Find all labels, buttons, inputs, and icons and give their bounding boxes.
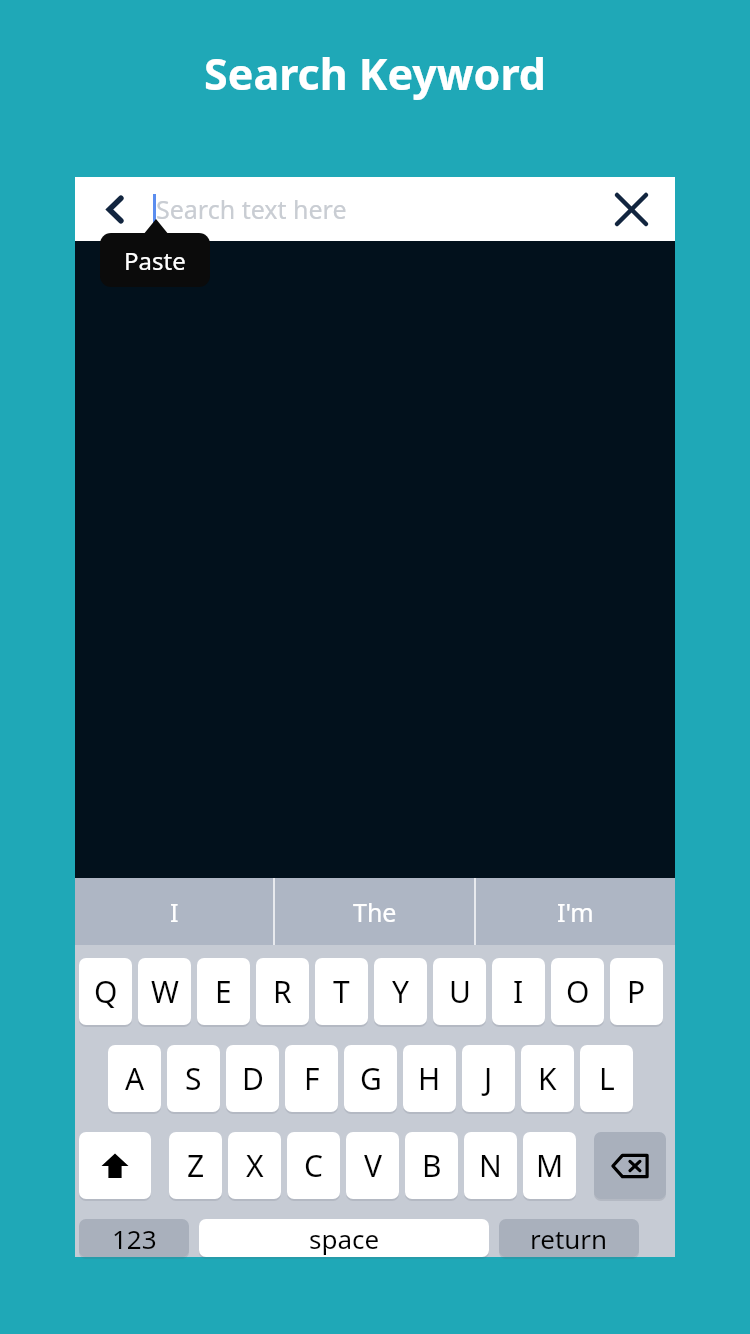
staticText: The [353,895,397,929]
staticText: K [538,1058,557,1099]
staticText: I [513,971,524,1012]
staticText: M [536,1145,564,1186]
staticText: F [304,1058,320,1099]
staticText: E [215,971,232,1012]
button[interactable]: D [226,1045,279,1112]
button[interactable]: Clear search [602,180,660,238]
staticText: J [484,1058,493,1099]
staticText: I [170,895,179,929]
button[interactable]: A [108,1045,161,1112]
button[interactable]: T [315,958,368,1025]
staticText: Paste [124,244,186,277]
staticText: P [627,971,646,1012]
button[interactable]: G [344,1045,397,1112]
button[interactable]: U [433,958,486,1025]
staticText: H [418,1058,441,1099]
staticText: R [273,971,292,1012]
staticText: A [125,1058,145,1099]
staticText: L [599,1058,615,1099]
staticText: G [360,1058,382,1099]
staticText: T [333,971,350,1012]
button[interactable]: Y [374,958,427,1025]
staticText: Q [94,971,118,1012]
button[interactable]: C [287,1132,340,1199]
button[interactable]: return [499,1219,639,1257]
button[interactable]: L [580,1045,633,1112]
staticText: N [479,1145,502,1186]
staticText: U [449,971,471,1012]
staticText: Search text here [156,192,347,226]
staticText: O [566,971,590,1012]
button[interactable]: Z [169,1132,222,1199]
button[interactable]: The [275,878,474,945]
staticText: C [304,1145,323,1186]
button[interactable]: Backspace [594,1132,666,1199]
button[interactable]: M [523,1132,576,1199]
button[interactable]: X [228,1132,281,1199]
staticText: I'm [557,895,594,929]
staticText: return [530,1221,608,1256]
button[interactable]: O [551,958,604,1025]
button[interactable]: 123 [79,1219,189,1257]
button[interactable]: Shift [79,1132,151,1199]
staticText: X [246,1145,264,1186]
staticText: Search Keyword [204,44,546,103]
button[interactable]: E [197,958,250,1025]
button[interactable]: F [285,1045,338,1112]
button[interactable]: B [405,1132,458,1199]
staticText: S [185,1058,202,1099]
staticText: V [364,1145,382,1186]
button[interactable]: Paste [100,233,210,287]
button[interactable]: I'm [476,878,675,945]
staticText: B [422,1145,442,1186]
button[interactable]: Back [84,178,146,240]
staticText: D [242,1058,264,1099]
staticText: Y [392,971,409,1012]
staticText: W [151,971,179,1012]
button[interactable]: K [521,1045,574,1112]
button[interactable]: Search text here [153,177,347,241]
button[interactable]: W [138,958,191,1025]
button[interactable]: P [610,958,663,1025]
button[interactable]: H [403,1045,456,1112]
button[interactable]: I [492,958,545,1025]
button[interactable]: R [256,958,309,1025]
button[interactable]: Q [79,958,132,1025]
staticText: space [309,1221,380,1256]
staticText: Z [187,1145,205,1186]
button[interactable]: S [167,1045,220,1112]
button[interactable]: I [75,878,273,945]
button[interactable]: J [462,1045,515,1112]
staticText: 123 [112,1221,157,1256]
button[interactable]: space [199,1219,489,1257]
button[interactable]: V [346,1132,399,1199]
button[interactable]: N [464,1132,517,1199]
